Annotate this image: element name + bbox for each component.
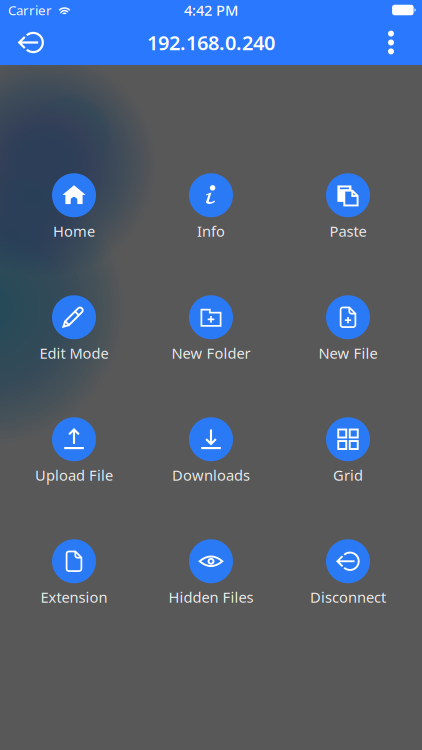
staticText: Hidden Files [168,587,253,607]
button[interactable]: Hidden Files [142,530,279,616]
staticText: 4:42 PM [184,0,238,20]
button[interactable]: New File [279,286,416,372]
button[interactable]: Upload File [5,408,142,494]
staticText: Extension [40,587,107,607]
staticText: Carrier [8,1,52,19]
button[interactable]: New Folder [142,286,279,372]
staticText: Downloads [172,465,250,485]
staticText: 192.168.0.240 [147,29,275,56]
button[interactable]: Extension [5,530,142,616]
staticText: Info [197,221,225,241]
button[interactable]: Home [5,164,142,250]
button[interactable]: Disconnect [6,20,56,64]
staticText: New Folder [171,343,250,363]
staticText: Edit Mode [39,343,108,363]
staticText: Disconnect [310,587,386,607]
staticText: Grid [333,465,363,485]
staticText: Upload File [35,465,113,485]
button[interactable]: Grid [279,408,416,494]
button[interactable]: Downloads [142,408,279,494]
button[interactable]: Info [142,164,279,250]
staticText: New File [318,343,377,363]
button[interactable]: Paste [279,164,416,250]
button[interactable]: Edit Mode [5,286,142,372]
staticText: Paste [329,221,366,241]
button[interactable]: More options [366,20,416,64]
button[interactable]: Disconnect [279,530,416,616]
staticText: Home [53,221,95,241]
